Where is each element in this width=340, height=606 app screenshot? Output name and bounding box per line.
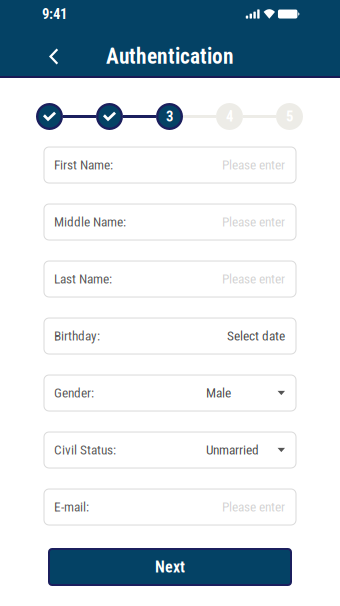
button[interactable]: Civil Status: xyxy=(44,432,296,468)
staticText: Unmarried xyxy=(206,442,259,458)
staticText: Birthday: xyxy=(54,328,100,344)
button[interactable]: Last Name: xyxy=(44,261,296,297)
staticText: Please enter xyxy=(222,499,285,515)
staticText: Please enter xyxy=(222,271,285,287)
staticText: Last Name: xyxy=(54,271,112,287)
staticText: Select date xyxy=(227,328,285,344)
staticText: Please enter xyxy=(222,214,285,230)
staticText: Middle Name: xyxy=(54,214,126,230)
staticText: 4 xyxy=(226,108,233,125)
staticText: Authentication xyxy=(106,44,234,69)
button[interactable]: Next xyxy=(49,549,291,585)
staticText: Male xyxy=(206,385,231,401)
staticText: Please enter xyxy=(222,157,285,173)
staticText: Gender: xyxy=(54,385,94,401)
button[interactable]: First Name: xyxy=(44,147,296,183)
staticText: E-mail: xyxy=(54,499,89,515)
staticText: 9:41 xyxy=(42,5,67,23)
button[interactable]: Birthday: xyxy=(44,318,296,354)
staticText: 5 xyxy=(286,108,293,125)
button[interactable]: Middle Name: xyxy=(44,204,296,240)
staticText: Next xyxy=(155,558,185,576)
button[interactable]: E-mail: xyxy=(44,489,296,525)
staticText: Civil Status: xyxy=(54,442,116,458)
button[interactable]: Gender: xyxy=(44,375,296,411)
staticText: First Name: xyxy=(54,157,113,173)
button[interactable]: Back xyxy=(34,38,73,75)
staticText: 3 xyxy=(166,108,173,125)
